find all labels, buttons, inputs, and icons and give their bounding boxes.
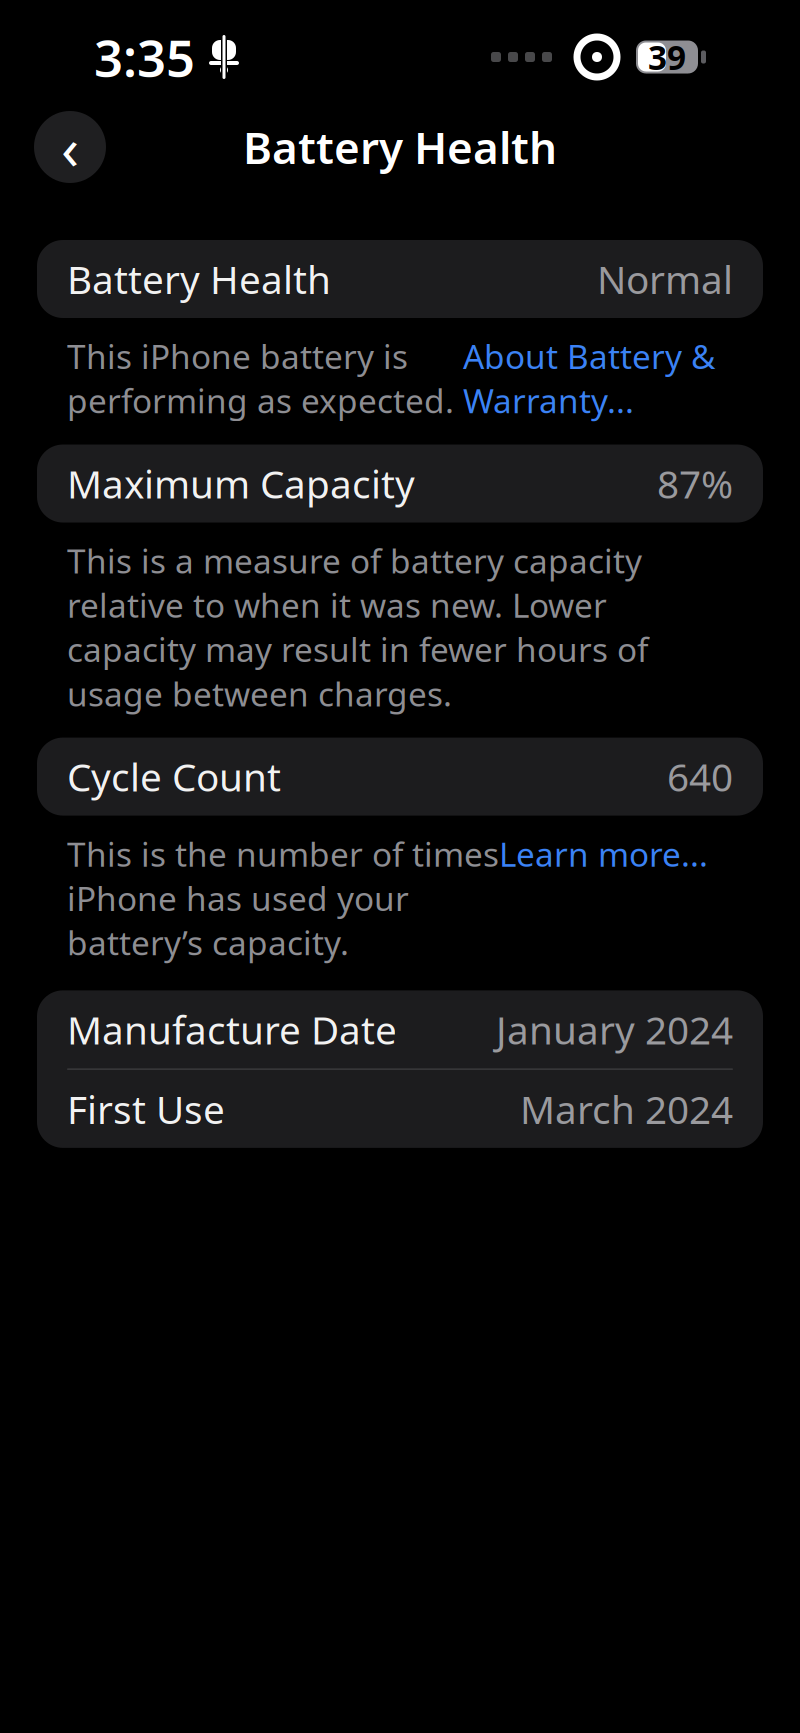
staticText: About Battery & Warranty...	[463, 334, 715, 422]
staticText: ‹	[61, 108, 79, 186]
staticText: January 2024	[496, 1004, 733, 1055]
staticText: First Use	[67, 1083, 225, 1134]
staticText: 39	[648, 35, 686, 79]
staticText: Maximum Capacity	[67, 458, 415, 509]
button[interactable]: Back	[34, 111, 106, 183]
staticText: This is the number of times iPhone has u…	[67, 832, 499, 964]
staticText: Manufacture Date	[67, 1004, 397, 1055]
button[interactable]: Battery Health	[37, 240, 763, 318]
button[interactable]: Learn more...	[499, 832, 708, 876]
staticText: This is a measure of battery capacity re…	[67, 538, 648, 716]
staticText: Normal	[597, 253, 733, 305]
button[interactable]: Maximum Capacity	[37, 444, 763, 522]
staticText: Cycle Count	[67, 751, 281, 802]
button[interactable]: About Battery & Warranty...	[463, 334, 715, 422]
staticText: Learn more...	[499, 832, 708, 876]
button[interactable]: Manufacture Date	[37, 990, 763, 1068]
staticText: 3:35	[94, 23, 195, 91]
staticText: Battery Health	[243, 118, 557, 176]
staticText: This iPhone battery is performing as exp…	[67, 334, 463, 422]
button[interactable]: Cycle Count	[37, 738, 763, 816]
staticText: 87%	[657, 458, 733, 509]
staticText: Battery Health	[67, 253, 331, 305]
staticText: 640	[667, 751, 733, 802]
button[interactable]: First Use	[37, 1070, 763, 1148]
staticText: March 2024	[520, 1083, 733, 1134]
